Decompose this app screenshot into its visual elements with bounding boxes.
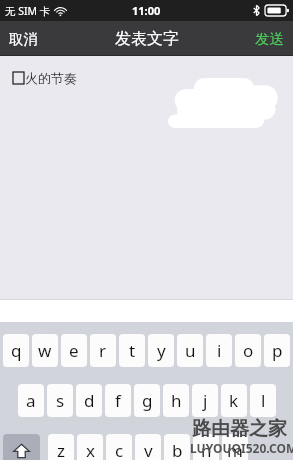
- staticText: s: [56, 389, 65, 412]
- staticText: d: [84, 389, 95, 412]
- button[interactable]: p: [264, 334, 290, 367]
- button[interactable]: h: [163, 384, 189, 417]
- button[interactable]: o: [235, 334, 261, 367]
- button[interactable]: y: [148, 334, 174, 367]
- button[interactable]: i: [206, 334, 232, 367]
- button[interactable]: q: [3, 334, 29, 367]
- button[interactable]: v: [135, 434, 161, 460]
- staticText: r: [99, 339, 107, 362]
- button[interactable]: a: [18, 384, 44, 417]
- staticText: l: [261, 389, 266, 412]
- staticText: LUYOUQI520.COM: [190, 440, 293, 456]
- staticText: 发表文字: [115, 29, 179, 49]
- button[interactable]: u: [177, 334, 203, 367]
- staticText: m: [227, 439, 243, 460]
- button[interactable]: d: [76, 384, 102, 417]
- button[interactable]: f: [105, 384, 131, 417]
- button[interactable]: g: [134, 384, 160, 417]
- button[interactable]: x: [77, 434, 103, 460]
- button[interactable]: b: [164, 434, 190, 460]
- button[interactable]: e: [61, 334, 87, 367]
- staticText: a: [26, 389, 36, 412]
- staticText: 无 SIM 卡: [5, 4, 51, 18]
- staticText: x: [86, 439, 95, 460]
- button[interactable]: w: [32, 334, 58, 367]
- staticText: u: [185, 339, 196, 362]
- button[interactable]: 取消: [0, 24, 47, 54]
- button[interactable]: n: [193, 434, 219, 460]
- staticText: h: [171, 389, 182, 412]
- staticText: 路由器之家: [192, 417, 287, 441]
- button[interactable]: m: [222, 434, 248, 460]
- button[interactable]: s: [47, 384, 73, 417]
- staticText: t: [129, 339, 136, 362]
- button[interactable]: 发送: [246, 24, 293, 54]
- staticText: g: [142, 389, 153, 412]
- staticText: v: [144, 439, 153, 460]
- button[interactable]: 火的节奏: [0, 56, 293, 300]
- staticText: j: [203, 389, 208, 412]
- button[interactable]: c: [106, 434, 132, 460]
- staticText: e: [69, 339, 79, 362]
- staticText: w: [38, 339, 52, 362]
- staticText: i: [217, 339, 222, 362]
- button[interactable]: r: [90, 334, 116, 367]
- button[interactable]: l: [250, 384, 276, 417]
- button[interactable]: z: [48, 434, 74, 460]
- button[interactable]: j: [192, 384, 218, 417]
- staticText: 火的节奏: [25, 70, 77, 86]
- button[interactable]: k: [221, 384, 247, 417]
- button[interactable]: Shift: [3, 434, 40, 460]
- staticText: o: [243, 339, 254, 362]
- staticText: 11:00: [132, 3, 161, 18]
- staticText: f: [115, 389, 121, 412]
- staticText: c: [115, 439, 124, 460]
- staticText: y: [157, 339, 166, 362]
- staticText: q: [11, 339, 22, 362]
- staticText: p: [272, 339, 283, 362]
- staticText: b: [172, 439, 183, 460]
- staticText: z: [57, 439, 65, 460]
- staticText: n: [201, 439, 212, 460]
- staticText: 取消: [9, 30, 38, 48]
- button[interactable]: t: [119, 334, 145, 367]
- staticText: k: [229, 389, 239, 412]
- staticText: 发送: [255, 30, 284, 48]
